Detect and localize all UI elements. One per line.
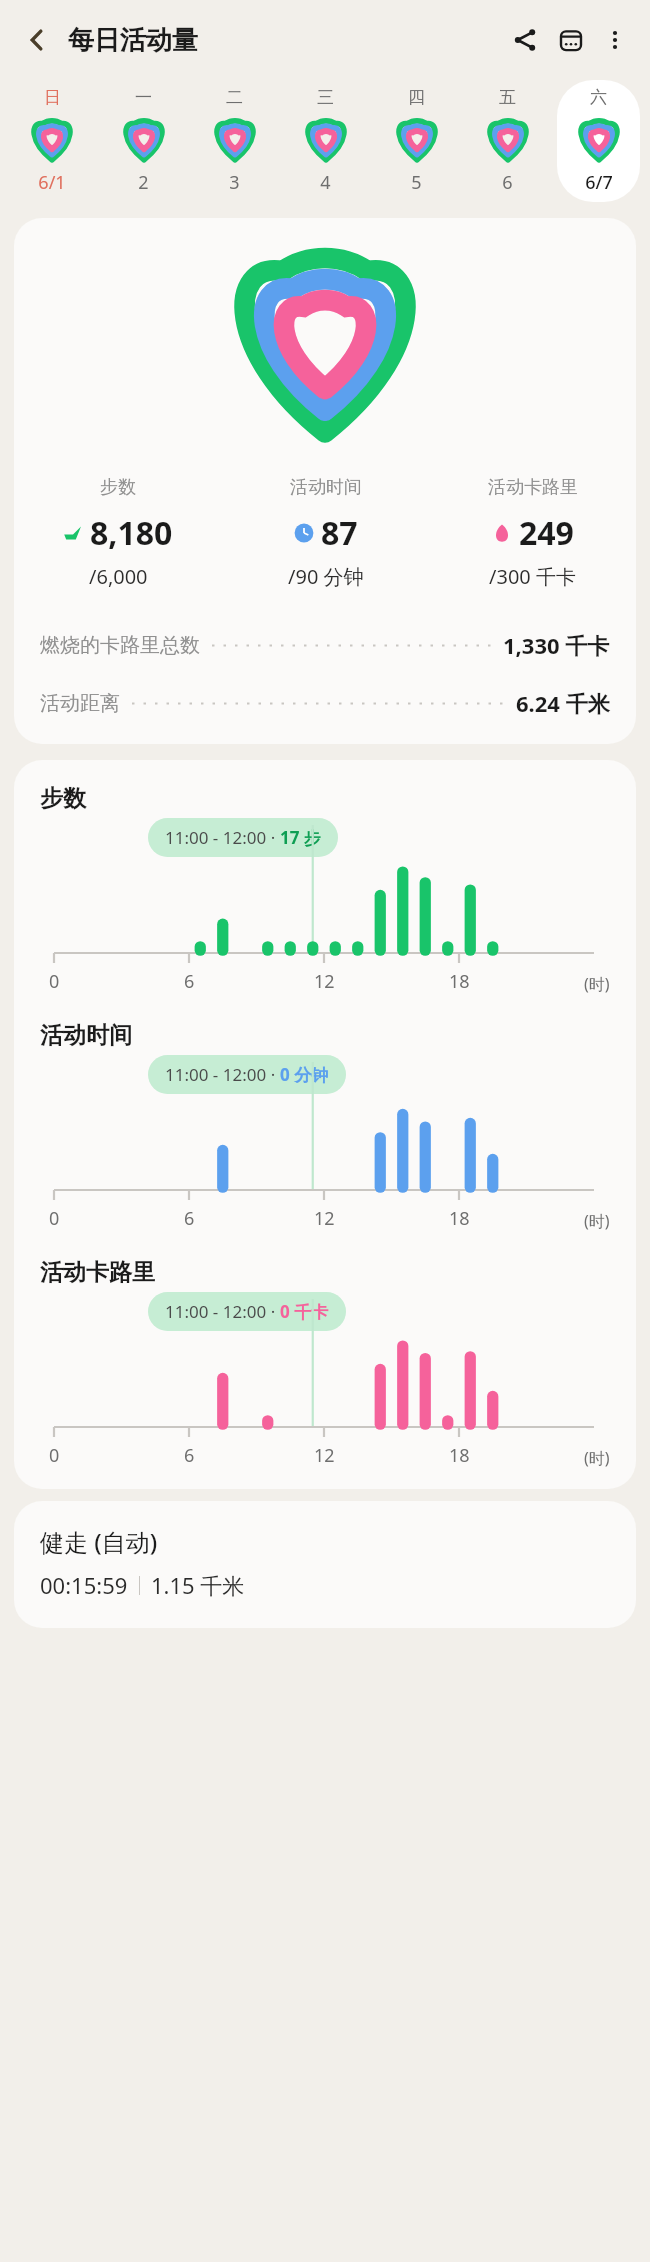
staticText: 6 (502, 170, 513, 195)
button[interactable]: 步数 (14, 218, 636, 744)
staticText: 燃烧的卡路里总数 (40, 633, 200, 658)
staticText: 12 (314, 969, 335, 994)
button[interactable]: 一 (102, 80, 185, 202)
staticText: 1,330 千卡 (503, 630, 610, 660)
button[interactable]: 四 (375, 80, 458, 202)
staticText: 步数 (40, 784, 86, 813)
staticText: 87 (321, 511, 358, 555)
staticText: 6 (184, 1443, 195, 1468)
staticText: 00:15:59 (40, 1570, 128, 1600)
staticText: 11:00 - 12:00 · (165, 1063, 280, 1086)
staticText: 2 (138, 170, 149, 195)
button[interactable]: 活动卡路里 (14, 1258, 636, 1469)
staticText: 1.15 千米 (151, 1570, 245, 1600)
staticText: 0 (49, 1443, 60, 1468)
button[interactable]: 健走 (自动) (14, 1501, 636, 1628)
staticText: 活动卡路里 (488, 476, 578, 499)
staticText: 0 (49, 1206, 60, 1231)
staticText: 六 (590, 87, 607, 108)
staticText: /300 千卡 (489, 563, 576, 590)
staticText: 12 (314, 1206, 335, 1231)
staticText: (时) (584, 1447, 610, 1469)
button[interactable]: 活动时间 (14, 1021, 636, 1232)
staticText: 18 (449, 1443, 470, 1468)
staticText: 三 (317, 87, 334, 108)
staticText: 8,180 (90, 511, 173, 555)
staticText: 6 (184, 1206, 195, 1231)
button[interactable]: 日 (10, 80, 94, 202)
staticText: /6,000 (89, 563, 148, 590)
staticText: 日 (44, 87, 61, 108)
staticText: 11:00 - 12:00 · (165, 1300, 280, 1323)
staticText: /90 分钟 (288, 563, 364, 590)
staticText: 健走 (自动) (40, 1525, 158, 1558)
staticText: 249 (519, 511, 574, 555)
staticText: 一 (135, 87, 152, 108)
staticText: 活动时间 (290, 476, 362, 499)
staticText: 17 步 (280, 826, 321, 849)
button[interactable]: 二 (193, 80, 276, 202)
button[interactable]: More options (594, 19, 636, 61)
staticText: 0 千卡 (280, 1300, 329, 1323)
staticText: 18 (449, 1206, 470, 1231)
staticText: 3 (229, 170, 240, 195)
staticText: 6.24 千米 (516, 688, 610, 718)
staticText: 18 (449, 969, 470, 994)
staticText: 五 (499, 87, 516, 108)
staticText: 11:00 - 12:00 · (165, 826, 280, 849)
staticText: (时) (584, 973, 610, 995)
staticText: 12 (314, 1443, 335, 1468)
staticText: 6/7 (585, 170, 613, 195)
staticText: 5 (411, 170, 422, 195)
staticText: 二 (226, 87, 243, 108)
staticText: (时) (584, 1210, 610, 1232)
staticText: 活动时间 (40, 1021, 132, 1050)
staticText: 活动距离 (40, 691, 120, 716)
button[interactable]: Calendar (548, 17, 594, 63)
button[interactable]: 五 (466, 80, 549, 202)
staticText: 四 (408, 87, 425, 108)
staticText: 0 (49, 969, 60, 994)
staticText: 活动卡路里 (40, 1258, 155, 1287)
button[interactable]: Share (502, 17, 548, 63)
staticText: 步数 (100, 476, 136, 499)
button[interactable]: Back (14, 17, 60, 63)
staticText: 6/1 (38, 170, 66, 195)
staticText: 6 (184, 969, 195, 994)
staticText: 4 (320, 170, 331, 195)
button[interactable]: 步数 (14, 784, 636, 995)
staticText: 每日活动量 (68, 24, 198, 57)
button[interactable]: 六 (557, 80, 640, 202)
staticText: 0 分钟 (280, 1063, 329, 1086)
button[interactable]: 三 (284, 80, 367, 202)
